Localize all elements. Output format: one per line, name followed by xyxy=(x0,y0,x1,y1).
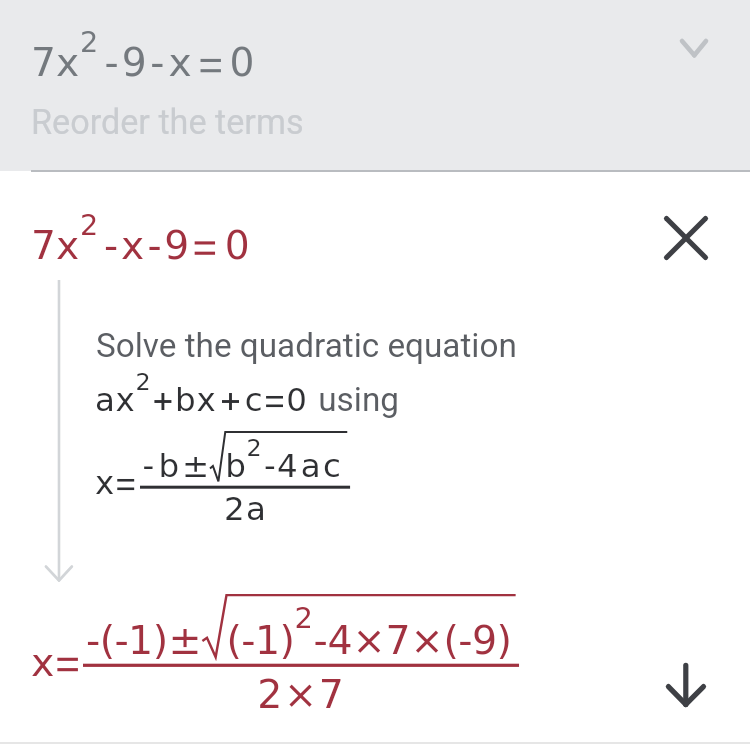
button[interactable]: Collapse step xyxy=(0,0,750,171)
button[interactable]: Close xyxy=(658,210,714,266)
button[interactable]: Next step xyxy=(658,658,714,714)
button[interactable]: Collapse step xyxy=(670,24,718,72)
